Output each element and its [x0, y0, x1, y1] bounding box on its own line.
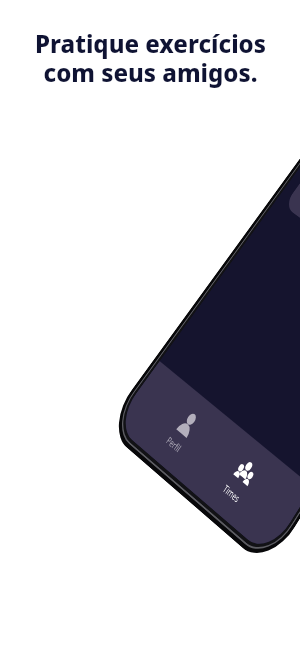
- staticText: Parquelândia, Foraleza: [51, 405, 212, 425]
- button[interactable]: Clube da Luluzinha: [31, 357, 300, 469]
- staticText: Pratique exercícios com seus amigos.: [35, 27, 266, 89]
- staticText: Clube da Luluzinha: [51, 375, 233, 401]
- button[interactable]: Clube da Lua: [31, 101, 300, 213]
- staticText: Bicicletar FortalCity: [51, 247, 242, 273]
- button[interactable]: Bicicletar FortalCity: [31, 229, 300, 341]
